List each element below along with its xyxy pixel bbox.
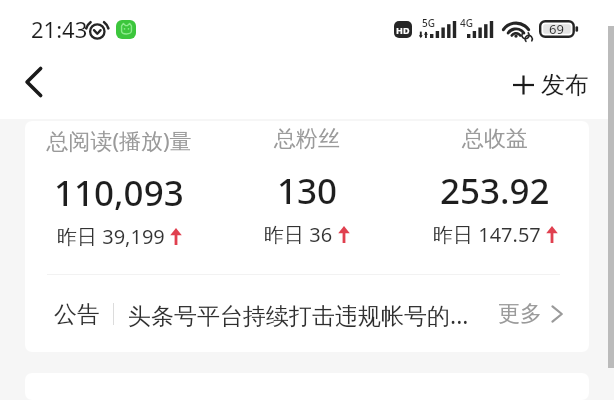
staticText: 更多	[498, 300, 542, 328]
button[interactable]: Back	[11, 60, 55, 104]
staticText: 公告	[54, 300, 100, 329]
button[interactable]: 发布	[505, 65, 597, 105]
staticText: 昨日 147.57	[433, 221, 541, 248]
staticText: 总粉丝	[274, 125, 340, 153]
staticText: 发布	[541, 70, 589, 100]
staticText: 昨日 36	[264, 221, 333, 248]
staticText: 头条号平台持续打击违规帐号的...	[128, 299, 492, 330]
button[interactable]: 总阅读(播放)量	[25, 125, 213, 250]
staticText: 4G	[460, 16, 473, 30]
staticText: 5G	[422, 16, 435, 30]
button[interactable]: 公告	[25, 276, 589, 352]
staticText: 总收益	[462, 125, 528, 153]
staticText: 总阅读(播放)量	[46, 125, 192, 155]
staticText: 69	[549, 20, 564, 38]
staticText: 253.92	[440, 167, 550, 215]
staticText: 130	[277, 167, 338, 215]
button[interactable]: 总粉丝	[213, 125, 401, 248]
button[interactable]: 总收益	[401, 125, 589, 248]
staticText: 昨日 39,199	[57, 223, 165, 250]
staticText: HD	[396, 24, 410, 36]
staticText: 21:43	[31, 14, 88, 44]
staticText: 110,093	[54, 169, 184, 217]
